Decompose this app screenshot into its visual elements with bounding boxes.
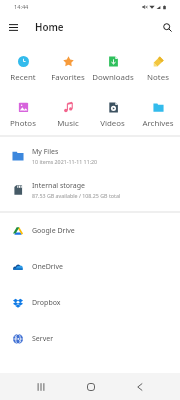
- staticText: Favorites: [51, 72, 85, 83]
- button[interactable]: Menu: [0, 14, 27, 40]
- button[interactable]: Internal storage: [0, 173, 180, 207]
- button[interactable]: Recent apps: [16, 373, 66, 400]
- staticText: Music: [57, 118, 79, 129]
- button[interactable]: Videos: [90, 101, 135, 129]
- button[interactable]: Dropbox: [0, 285, 180, 321]
- staticText: Downloads: [92, 72, 134, 83]
- staticText: OneDrive: [32, 262, 64, 272]
- staticText: Notes: [147, 72, 169, 83]
- button[interactable]: Home: [66, 373, 115, 400]
- staticText: My Files: [32, 147, 59, 157]
- staticText: Server: [32, 334, 54, 344]
- staticText: Internal storage: [32, 181, 85, 191]
- staticText: Dropbox: [32, 298, 61, 308]
- button[interactable]: OneDrive: [0, 249, 180, 285]
- button[interactable]: Music: [45, 101, 90, 129]
- staticText: Archives: [142, 118, 174, 129]
- button[interactable]: Recent: [0, 55, 45, 83]
- button[interactable]: Back: [115, 373, 164, 400]
- button[interactable]: Notes: [135, 55, 180, 83]
- staticText: Photos: [10, 118, 36, 129]
- button[interactable]: Archives: [135, 101, 180, 129]
- button[interactable]: Search: [154, 14, 180, 40]
- staticText: Google Drive: [32, 226, 75, 236]
- button[interactable]: Favorites: [45, 55, 90, 83]
- staticText: 14:44: [14, 3, 29, 11]
- staticText: Recent: [10, 72, 36, 83]
- staticText: Videos: [100, 118, 125, 129]
- staticText: 10 items 2021-11-11 11:20: [32, 158, 98, 165]
- button[interactable]: Downloads: [90, 55, 135, 83]
- button[interactable]: My Files: [0, 139, 180, 173]
- staticText: 87.53 GB available / 108.25 GB total: [32, 192, 121, 199]
- button[interactable]: Google Drive: [0, 213, 180, 249]
- staticText: Home: [35, 21, 64, 34]
- button[interactable]: Server: [0, 321, 180, 357]
- button[interactable]: Photos: [0, 101, 45, 129]
